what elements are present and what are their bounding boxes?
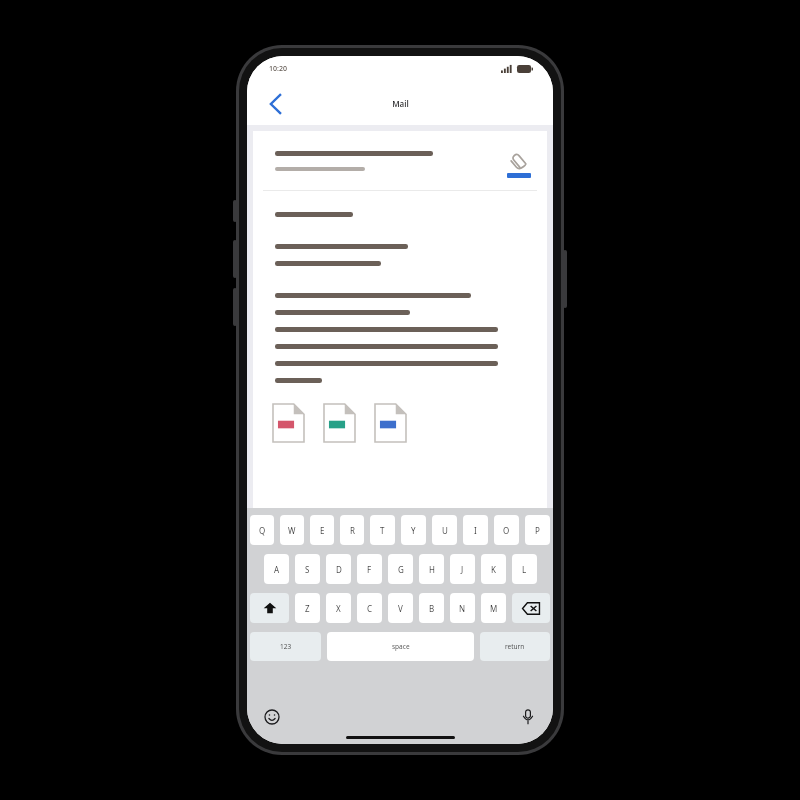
button[interactable]: Z [295,593,320,623]
staticText: O [503,525,510,536]
staticText: D [336,564,342,575]
staticText: N [459,603,466,614]
button[interactable]: T [370,515,395,545]
button[interactable]: A [264,554,289,584]
button[interactable]: Q [250,515,274,545]
button[interactable]: S [295,554,320,584]
button[interactable]: M [481,593,506,623]
staticText: W [288,525,296,536]
button[interactable]: E [310,515,334,545]
button[interactable]: Backspace [512,593,550,623]
staticText: R [350,525,355,536]
staticText: H [429,564,435,575]
button[interactable]: W [280,515,304,545]
staticText: M [490,603,498,614]
button[interactable]: Emoji [261,706,283,728]
button[interactable]: Attach file [509,151,529,171]
staticText: X [336,603,341,614]
button[interactable]: Back [259,88,291,120]
button[interactable]: U [432,515,457,545]
button[interactable]: R [340,515,364,545]
staticText: L [522,564,527,575]
button[interactable]: 123 [250,632,321,661]
button[interactable]: K [481,554,506,584]
button[interactable]: O [494,515,519,545]
button[interactable]: N [450,593,475,623]
staticText: K [491,564,496,575]
staticText: Mail [392,98,409,109]
button[interactable]: X [326,593,351,623]
staticText: space [392,642,410,651]
staticText: V [398,603,403,614]
button[interactable]: H [419,554,444,584]
button[interactable]: D [326,554,351,584]
staticText: U [442,525,448,536]
button[interactable]: I [463,515,488,545]
button[interactable]: B [419,593,444,623]
staticText: 123 [280,642,292,651]
button[interactable]: J [450,554,475,584]
button[interactable]: L [512,554,537,584]
button[interactable]: return [480,632,550,661]
staticText: C [367,603,373,614]
button[interactable]: V [388,593,413,623]
staticText: Z [305,603,310,614]
staticText: P [535,525,540,536]
button[interactable]: P [525,515,550,545]
staticText: B [429,603,435,614]
button[interactable]: Send [507,173,531,178]
staticText: J [461,564,464,575]
staticText: A [274,564,280,575]
staticText: F [367,564,372,575]
button[interactable]: C [357,593,382,623]
button[interactable]: Y [401,515,426,545]
button[interactable]: Dictate [517,706,539,728]
staticText: return [505,642,525,651]
staticText: Y [411,525,416,536]
button[interactable]: Shift [250,593,289,623]
staticText: S [305,564,310,575]
staticText: T [380,525,385,536]
staticText: G [398,564,404,575]
staticText: E [320,525,325,536]
staticText: 10:20 [269,64,287,74]
button[interactable]: space [327,632,474,661]
button[interactable]: G [388,554,413,584]
staticText: I [474,525,477,536]
staticText: Q [259,525,266,536]
button[interactable]: F [357,554,382,584]
